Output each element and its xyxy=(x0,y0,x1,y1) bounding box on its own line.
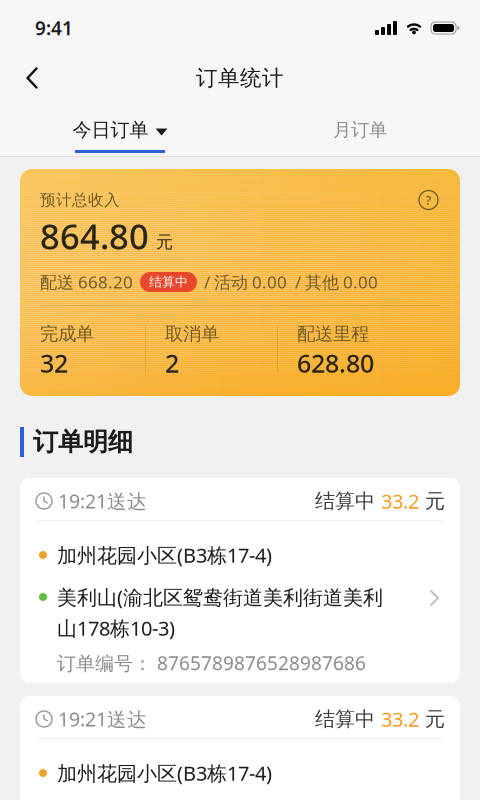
staticText: 配送 668.20 xyxy=(40,270,133,294)
staticText: 9:41 xyxy=(35,15,73,41)
staticText: 元 xyxy=(419,488,445,514)
staticText: 元 xyxy=(419,706,445,732)
staticText: / 活动 0.00 / 其他 0.00 xyxy=(204,270,378,294)
staticText: 预计总收入 xyxy=(40,190,120,210)
staticText: 19:21送达 xyxy=(58,706,147,732)
button[interactable]: 19:21送达 xyxy=(20,478,460,683)
staticText: 订单编号： 8765789876528987686 xyxy=(57,650,366,676)
staticText: 完成单 xyxy=(40,322,94,346)
staticText: 配送里程 xyxy=(297,322,369,346)
button[interactable]: 今日订单 xyxy=(0,104,240,156)
staticText: 结算中 xyxy=(315,706,381,732)
staticText: 取消单 xyxy=(165,322,219,346)
staticText: 19:21送达 xyxy=(58,488,147,514)
button[interactable]: 月订单 xyxy=(240,104,480,156)
staticText: 山178栋10-3) xyxy=(57,614,175,642)
button[interactable]: Back xyxy=(0,59,38,97)
staticText: 2 xyxy=(165,346,179,380)
staticText: 加州花园小区(B3栋17-4) xyxy=(57,759,272,787)
staticText: 864.80 xyxy=(40,212,149,259)
staticText: 33.2 xyxy=(381,705,419,733)
button[interactable]: 说明 xyxy=(419,190,440,209)
staticText: 结算中 xyxy=(315,488,381,514)
staticText: 32 xyxy=(40,346,68,380)
staticText: ? xyxy=(425,191,431,209)
staticText: 元 xyxy=(156,231,173,253)
button[interactable]: 19:21送达 xyxy=(20,696,460,800)
staticText: 月订单 xyxy=(333,118,387,142)
staticText: 结算中 xyxy=(149,274,188,290)
staticText: 33.2 xyxy=(381,487,419,515)
staticText: 今日订单 xyxy=(72,118,148,142)
staticText: 订单明细 xyxy=(33,426,133,458)
staticText: 订单统计 xyxy=(196,64,284,92)
staticText: 加州花园小区(B3栋17-4) xyxy=(57,541,272,569)
staticText: 628.80 xyxy=(297,346,374,380)
staticText: 美利山(渝北区鸳鸯街道美利街道美利 xyxy=(57,583,383,611)
